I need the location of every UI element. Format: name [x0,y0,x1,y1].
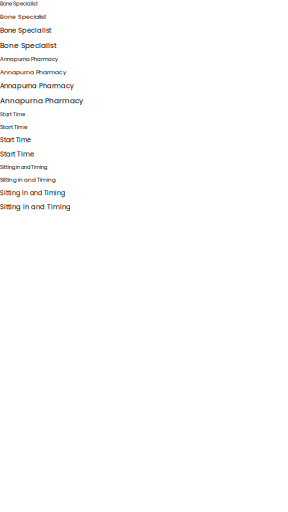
staticText: Sitting in and Timing [0,202,71,212]
staticText: Sitting in and Timing [0,164,47,171]
staticText: Annapurna Pharmacy [0,68,66,76]
staticText: Bone Specialist [0,0,38,7]
staticText: Sitting in and Timing [0,176,56,184]
staticText: Annapurna Pharmacy [0,81,74,91]
staticText: Start Time [0,123,27,131]
staticText: Start Time [0,149,34,159]
staticText: Start Time [0,136,31,144]
staticText: Bone Specialist [0,12,46,21]
staticText: Start Time [0,111,25,118]
staticText: Bone Specialist [0,26,51,35]
staticText: Annapurna Pharmacy [0,96,83,106]
staticText: Sitting in and Timing [0,189,65,197]
staticText: Annapurna Pharmacy [0,55,58,63]
staticText: Bone Specialist [0,40,57,50]
